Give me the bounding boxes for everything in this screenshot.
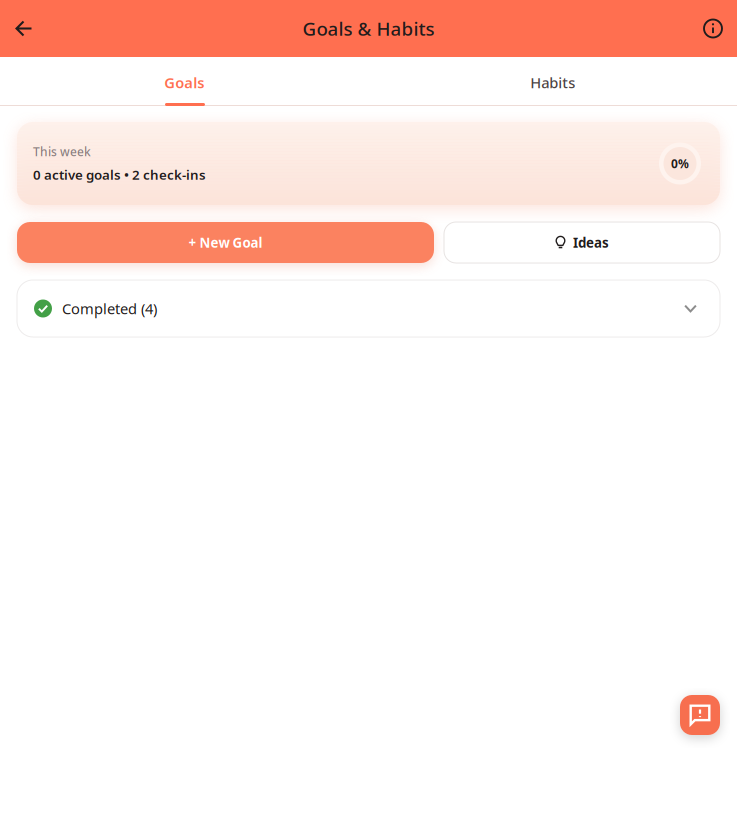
staticText: Ideas (573, 234, 609, 251)
staticText: Habits (530, 73, 575, 92)
button[interactable]: Completed (4) (17, 280, 720, 337)
staticText: Goals (164, 73, 204, 92)
staticText: This week (33, 144, 91, 160)
staticText: 0% (671, 155, 689, 171)
button[interactable]: Information (691, 6, 735, 50)
staticText: Completed (4) (62, 299, 157, 318)
button[interactable]: Send feedback (680, 695, 720, 735)
staticText: 0 active goals • 2 check-ins (33, 166, 206, 183)
button[interactable]: Ideas (444, 222, 720, 263)
button[interactable]: Goals (0, 59, 368, 106)
button[interactable]: Habits (368, 59, 737, 106)
staticText: Goals & Habits (302, 16, 434, 41)
button[interactable]: + New Goal (17, 222, 434, 263)
staticText: + New Goal (188, 234, 262, 251)
button[interactable]: Back (2, 6, 46, 50)
